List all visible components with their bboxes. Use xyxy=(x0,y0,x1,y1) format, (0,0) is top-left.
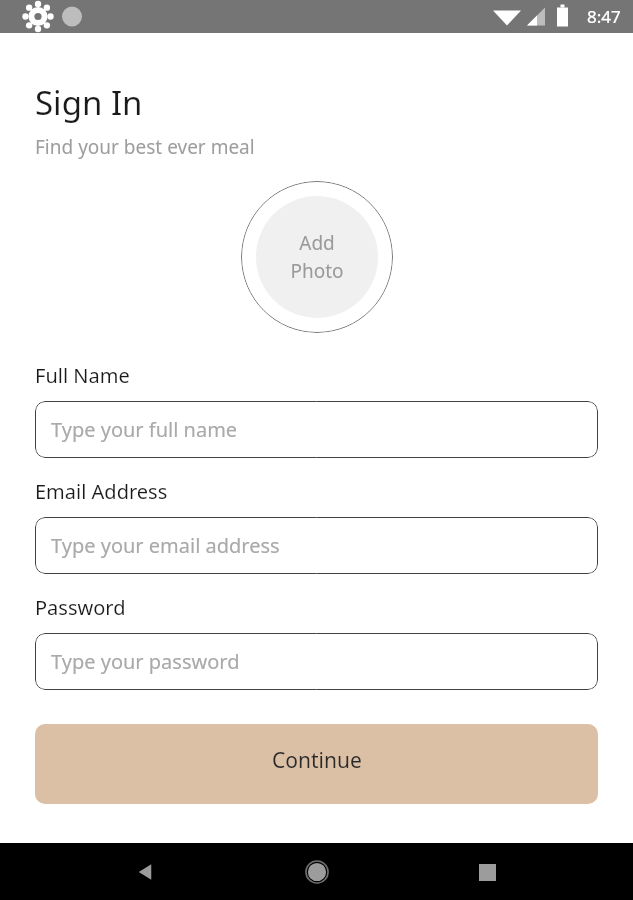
staticText: Type your full name xyxy=(51,416,238,443)
button[interactable]: Continue xyxy=(35,724,598,804)
button[interactable]: Home xyxy=(293,848,341,896)
staticText: Sign In xyxy=(35,80,143,125)
button[interactable]: Back xyxy=(122,848,170,896)
button[interactable]: Add Photo xyxy=(241,181,393,333)
staticText: Find your best ever meal xyxy=(35,134,255,160)
staticText: Add Photo xyxy=(290,230,344,284)
button[interactable]: Type your password xyxy=(35,633,598,690)
staticText: Continue xyxy=(272,746,362,775)
staticText: 8:47 xyxy=(587,5,621,28)
staticText: Full Name xyxy=(35,362,130,389)
staticText: Type your email address xyxy=(51,532,280,559)
button[interactable]: Type your full name xyxy=(35,401,598,458)
staticText: Password xyxy=(35,594,126,621)
staticText: Type your password xyxy=(51,648,240,675)
button[interactable]: Recent apps xyxy=(463,848,511,896)
staticText: Email Address xyxy=(35,478,168,505)
button[interactable]: Type your email address xyxy=(35,517,598,574)
